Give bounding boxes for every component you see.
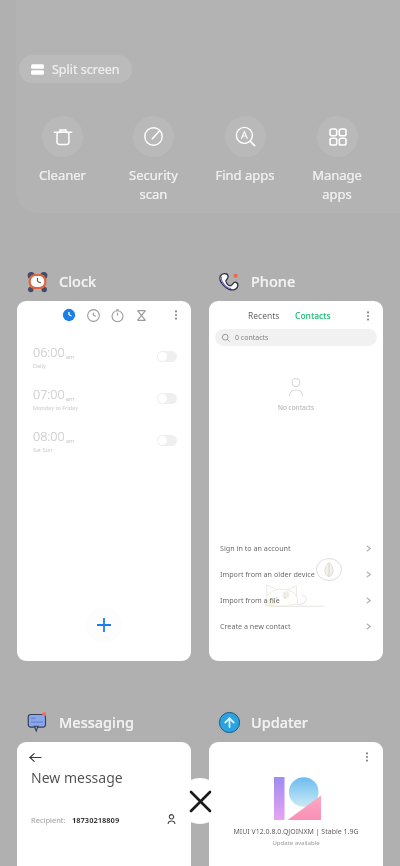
button[interactable]: Split screen xyxy=(19,55,132,83)
button[interactable]: 0 contacts xyxy=(215,329,377,346)
button[interactable]: 06:00 xyxy=(17,335,191,377)
staticText: am xyxy=(66,395,75,402)
button[interactable]: Close all xyxy=(177,778,223,824)
button[interactable]: Recents xyxy=(248,310,280,322)
staticText: Recents xyxy=(248,310,280,322)
staticText: Daily xyxy=(33,362,46,369)
button[interactable]: Back xyxy=(26,748,45,767)
staticText: Sign in to an account xyxy=(220,543,291,553)
staticText: Sat Sun xyxy=(33,446,53,453)
button[interactable]: Security scan xyxy=(108,114,199,205)
staticText: Contacts xyxy=(295,310,331,322)
staticText: Updater xyxy=(251,712,308,732)
button[interactable]: Import from an older device xyxy=(209,561,383,587)
staticText: Clock xyxy=(59,271,97,291)
button[interactable]: Clock xyxy=(17,269,97,292)
staticText: 0 contacts xyxy=(235,333,269,343)
button[interactable]: Contacts xyxy=(295,310,331,322)
button[interactable]: 07:00 xyxy=(17,377,191,419)
button[interactable]: Alarm toggle xyxy=(157,435,177,446)
staticText: Find apps xyxy=(215,166,275,184)
button[interactable]: Alarm toggle xyxy=(157,393,177,404)
staticText: Recipient: xyxy=(31,815,66,825)
button[interactable]: Add alarm xyxy=(86,607,122,643)
button[interactable]: More options xyxy=(17,301,191,661)
staticText: Import from a file xyxy=(220,595,280,605)
other: More options xyxy=(361,751,373,763)
button[interactable]: Sign in to an account xyxy=(209,535,383,561)
staticText: 07:00 xyxy=(33,386,65,403)
button[interactable]: Phone xyxy=(209,269,296,292)
button[interactable]: Cleaner xyxy=(17,114,108,186)
button[interactable]: Find apps xyxy=(199,114,291,186)
staticText: Create a new contact xyxy=(220,621,291,631)
staticText: am xyxy=(66,437,75,444)
staticText: Messaging xyxy=(59,712,135,732)
other: More options xyxy=(362,310,374,322)
button[interactable]: Create a new contact xyxy=(209,613,383,639)
button[interactable]: 08:00 xyxy=(17,419,191,461)
staticText: MIUI V12.0.8.0.QJOINXM | Stable 1.9G xyxy=(209,827,383,837)
button[interactable]: Alarm toggle xyxy=(157,351,177,362)
staticText: Import from an older device xyxy=(220,569,315,579)
staticText: Cleaner xyxy=(39,166,86,184)
staticText: Phone xyxy=(251,271,296,291)
staticText: New message xyxy=(31,768,123,787)
other: More options xyxy=(170,309,182,321)
button[interactable]: Messaging xyxy=(17,710,135,733)
staticText: 18730218809 xyxy=(72,815,120,825)
staticText: Split screen xyxy=(52,61,120,78)
button[interactable]: Updater xyxy=(209,710,308,733)
staticText: 06:00 xyxy=(33,344,65,361)
button[interactable]: Back xyxy=(17,742,191,866)
button[interactable]: More options xyxy=(209,742,383,866)
staticText: Security scan xyxy=(129,166,178,203)
staticText: No contacts xyxy=(278,403,315,412)
staticText: Update available xyxy=(209,839,383,847)
staticText: Monday to Friday xyxy=(33,404,78,411)
staticText: 08:00 xyxy=(33,428,65,445)
staticText: Manage apps xyxy=(312,166,362,203)
button[interactable]: Import from a file xyxy=(209,587,383,613)
button[interactable]: Recents xyxy=(209,301,383,661)
button[interactable]: Manage apps xyxy=(291,114,383,205)
staticText: am xyxy=(66,353,75,360)
